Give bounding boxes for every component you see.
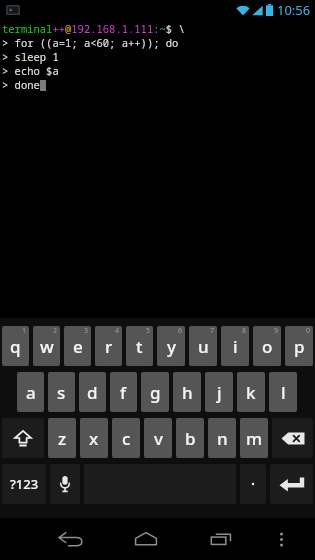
button[interactable]: t	[126, 326, 153, 366]
button[interactable]: c	[112, 418, 140, 458]
staticText: 5	[146, 326, 151, 336]
button[interactable]: Period	[240, 464, 266, 504]
staticText: 1	[22, 326, 27, 336]
staticText: d	[87, 381, 98, 404]
button[interactable]: r	[95, 326, 122, 366]
staticText: y	[167, 335, 176, 358]
button[interactable]: More options	[258, 518, 305, 560]
staticText: r	[105, 335, 113, 358]
button[interactable]: k	[237, 372, 265, 412]
staticText: x	[89, 427, 99, 450]
button[interactable]: Back	[33, 518, 108, 560]
staticText: 3	[84, 326, 89, 336]
staticText: i	[233, 335, 238, 358]
staticText: > sleep 1	[2, 50, 59, 64]
staticText: ?123	[10, 475, 39, 493]
staticText: e	[73, 335, 83, 358]
staticText: v	[154, 427, 163, 450]
button[interactable]: Enter	[270, 464, 313, 504]
staticText: q	[10, 335, 21, 358]
staticText: 7	[210, 326, 215, 336]
staticText: t	[136, 335, 143, 358]
staticText: > for ((a=1; a<60; a++)); do	[2, 36, 179, 50]
button[interactable]: i	[221, 326, 249, 366]
button[interactable]: x	[80, 418, 108, 458]
button[interactable]: n	[208, 418, 236, 458]
button[interactable]: Voice input	[50, 464, 80, 504]
button[interactable]: f	[110, 372, 137, 412]
button[interactable]: u	[189, 326, 217, 366]
button[interactable]: e	[64, 326, 91, 366]
button[interactable]: Backspace	[272, 418, 313, 458]
staticText: l	[281, 381, 286, 404]
staticText: 2	[53, 326, 58, 336]
button[interactable]: b	[176, 418, 204, 458]
staticText: k	[246, 381, 256, 404]
staticText: b	[185, 427, 196, 450]
staticText: 8	[242, 326, 247, 336]
button[interactable]: d	[79, 372, 106, 412]
staticText: o	[262, 335, 273, 358]
staticText: p	[294, 335, 305, 358]
button[interactable]: w	[33, 326, 60, 366]
button[interactable]: s	[48, 372, 75, 412]
staticText: h	[182, 381, 193, 404]
staticText: f	[120, 381, 127, 404]
button[interactable]: ?123	[2, 464, 46, 504]
button[interactable]: q	[2, 326, 29, 366]
staticText: 9	[274, 326, 279, 336]
staticText: u	[198, 335, 209, 358]
staticText: 0	[306, 326, 311, 336]
staticText: a	[26, 381, 36, 404]
staticText: w	[40, 335, 54, 358]
button[interactable]: o	[253, 326, 281, 366]
staticText: > echo $a	[2, 64, 59, 78]
staticText: m	[246, 427, 263, 450]
staticText: s	[57, 381, 66, 404]
staticText: j	[217, 381, 222, 404]
button[interactable]: v	[144, 418, 172, 458]
button[interactable]: z	[48, 418, 76, 458]
button[interactable]: a	[17, 372, 44, 412]
staticText: > done	[2, 78, 40, 92]
button[interactable]: l	[269, 372, 297, 412]
staticText: terminal++@192.168.1.111:~$ \	[2, 22, 185, 36]
staticText: 10:56	[277, 1, 311, 19]
button[interactable]: g	[141, 372, 169, 412]
staticText: 4	[115, 326, 120, 336]
button[interactable]: Shift	[2, 418, 44, 458]
staticText: n	[217, 427, 228, 450]
button[interactable]: p	[285, 326, 313, 366]
button[interactable]: Home	[108, 518, 183, 560]
staticText: 6	[178, 326, 183, 336]
button[interactable]: m	[240, 418, 268, 458]
staticText: g	[150, 381, 161, 404]
button[interactable]: h	[173, 372, 201, 412]
button[interactable]: Recent apps	[183, 518, 258, 560]
staticText: c	[122, 427, 131, 450]
staticText: z	[58, 427, 67, 450]
button[interactable]: j	[205, 372, 233, 412]
button[interactable]: y	[157, 326, 185, 366]
